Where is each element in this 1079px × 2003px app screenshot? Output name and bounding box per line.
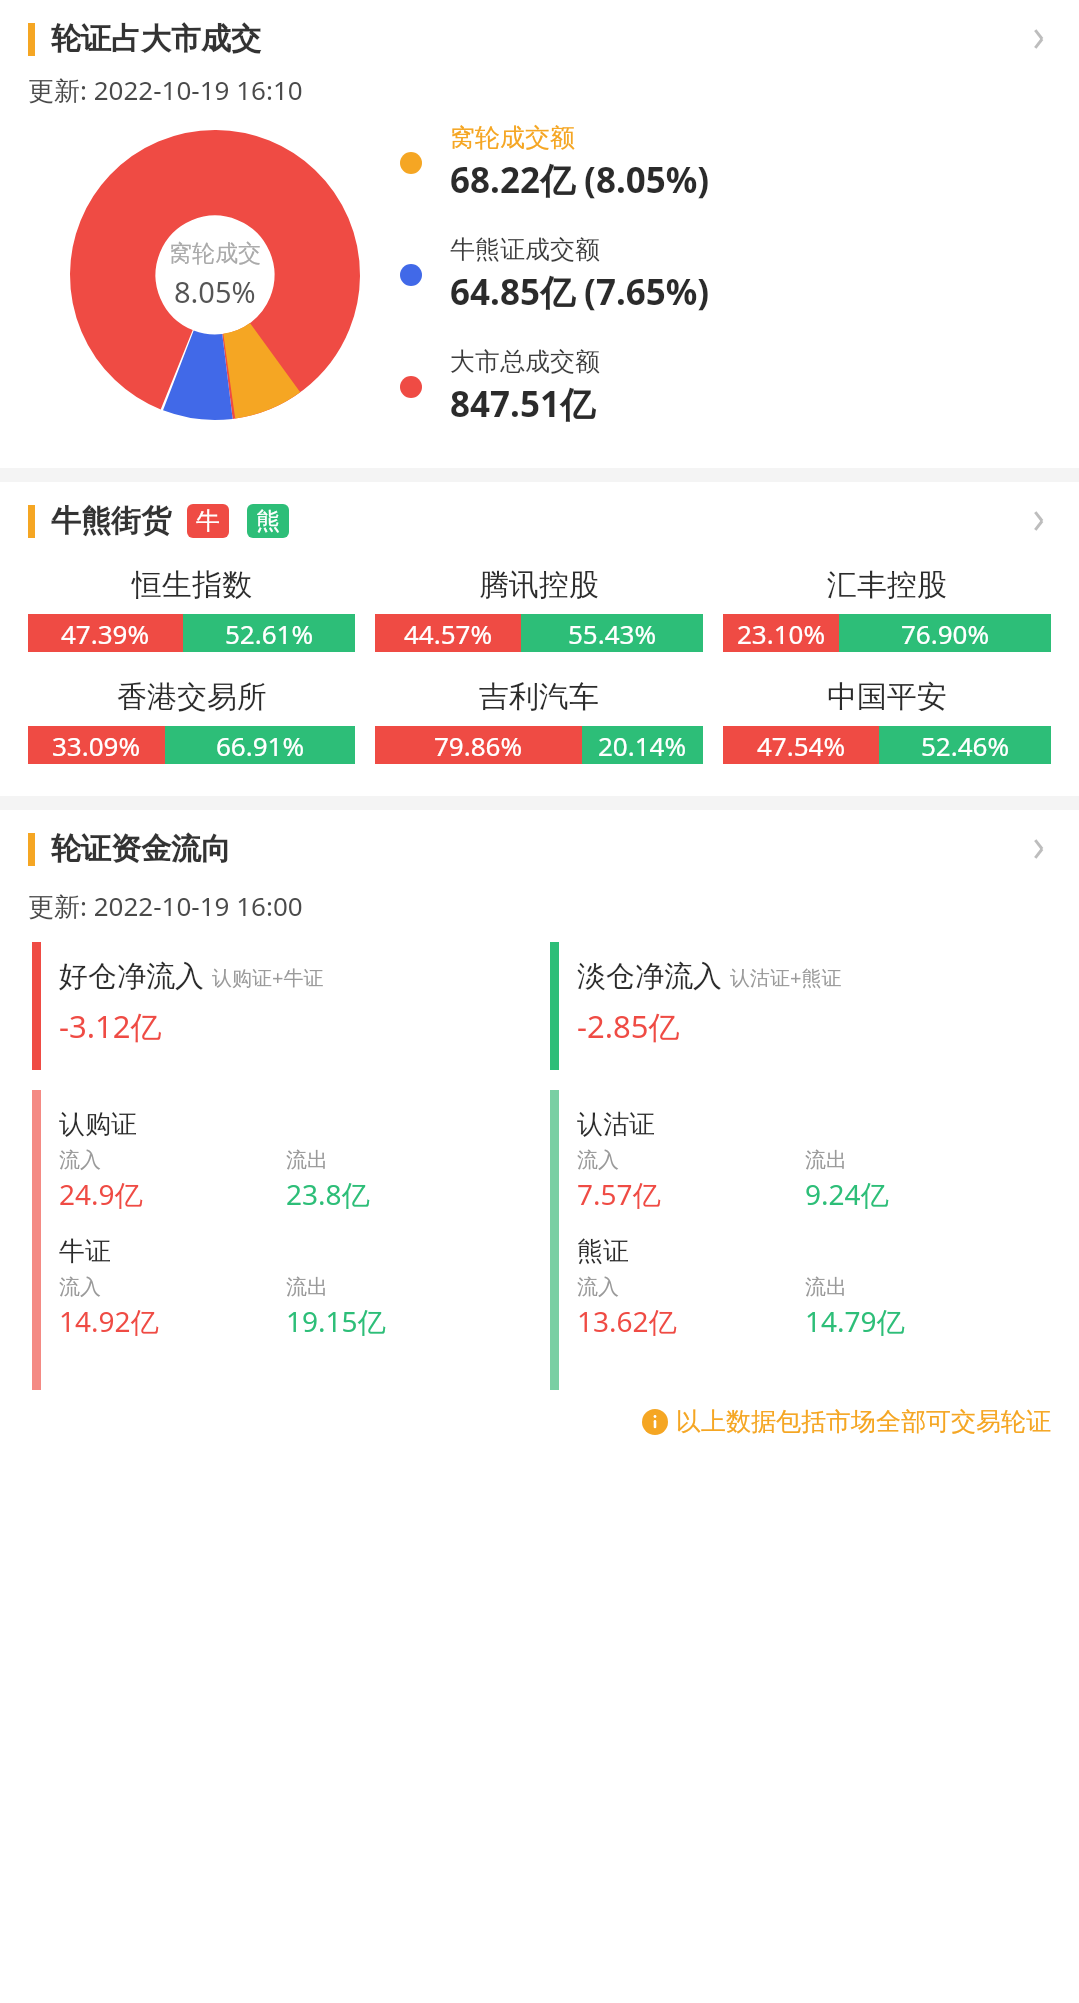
staticText: 7.57亿: [577, 1175, 661, 1213]
button[interactable]: 香港交易所: [18, 672, 365, 770]
staticText: 847.51亿: [450, 380, 595, 428]
staticText: 流入: [577, 1147, 619, 1173]
staticText: 轮证资金流向: [51, 830, 231, 868]
button[interactable]: 轮证资金流向: [0, 810, 1079, 874]
staticText: 76.90%: [901, 616, 990, 651]
staticText: 好仓净流入: [59, 958, 204, 995]
staticText: 以上数据包括市场全部可交易轮证: [676, 1406, 1051, 1437]
staticText: 淡仓净流入: [577, 958, 722, 995]
button[interactable]: 恒生指数: [18, 560, 365, 658]
staticText: -2.85亿: [577, 1005, 680, 1047]
staticText: 大市总成交额: [450, 346, 600, 377]
staticText: 牛证: [59, 1235, 111, 1268]
staticText: 更新: 2022-10-19 16:00: [28, 888, 303, 924]
staticText: 14.92亿: [59, 1302, 159, 1340]
staticText: 66.91%: [216, 728, 305, 763]
staticText: 68.22亿 (8.05%): [450, 156, 710, 204]
staticText: 8.05%: [174, 272, 256, 311]
staticText: 窝轮成交: [169, 239, 261, 268]
staticText: 牛: [196, 506, 220, 536]
staticText: 流出: [805, 1274, 847, 1300]
button[interactable]: 大市总成交额: [400, 346, 1059, 428]
other: Information: [642, 1409, 668, 1435]
staticText: 9.24亿: [805, 1175, 889, 1213]
button[interactable]: 牛熊街货: [0, 482, 1079, 546]
staticText: 33.09%: [52, 728, 141, 763]
staticText: 香港交易所: [117, 678, 267, 716]
staticText: 认沽证: [577, 1108, 655, 1141]
staticText: 认沽证+熊证: [730, 964, 842, 991]
staticText: 20.14%: [598, 728, 687, 763]
staticText: 吉利汽车: [479, 678, 599, 716]
button[interactable]: 轮证占大市成交: [0, 0, 1079, 64]
staticText: 腾讯控股: [479, 566, 599, 604]
staticText: 窝轮成交额: [450, 122, 575, 153]
staticText: 恒生指数: [132, 566, 252, 604]
staticText: 流出: [286, 1274, 328, 1300]
staticText: 轮证占大市成交: [51, 20, 261, 58]
staticText: 19.15亿: [286, 1302, 386, 1340]
staticText: 47.54%: [757, 728, 846, 763]
button[interactable]: 认沽证: [550, 1090, 1047, 1390]
button[interactable]: Information: [0, 1406, 1079, 1437]
staticText: 熊: [256, 506, 280, 536]
staticText: 64.85亿 (7.65%): [450, 268, 710, 316]
staticText: 更新: 2022-10-19 16:10: [28, 72, 303, 108]
staticText: 47.39%: [61, 616, 150, 651]
staticText: 流入: [577, 1274, 619, 1300]
staticText: 24.9亿: [59, 1175, 143, 1213]
staticText: 流出: [805, 1147, 847, 1173]
staticText: 23.8亿: [286, 1175, 370, 1213]
staticText: 52.46%: [921, 728, 1010, 763]
button[interactable]: 汇丰控股: [713, 560, 1061, 658]
staticText: 牛熊证成交额: [450, 234, 600, 265]
staticText: -3.12亿: [59, 1005, 162, 1047]
staticText: 熊证: [577, 1235, 629, 1268]
staticText: 79.86%: [434, 728, 523, 763]
button[interactable]: 淡仓净流入: [550, 942, 1047, 1070]
staticText: 55.43%: [568, 616, 657, 651]
button[interactable]: 牛熊证成交额: [400, 234, 1059, 316]
staticText: 52.61%: [225, 616, 314, 651]
button[interactable]: 吉利汽车: [365, 672, 713, 770]
staticText: 中国平安: [827, 678, 947, 716]
button[interactable]: 认购证: [32, 1090, 528, 1390]
staticText: 认购证+牛证: [212, 964, 324, 991]
staticText: 认购证: [59, 1108, 137, 1141]
staticText: 流出: [286, 1147, 328, 1173]
staticText: 44.57%: [404, 616, 493, 651]
staticText: 汇丰控股: [827, 566, 947, 604]
staticText: 13.62亿: [577, 1302, 677, 1340]
staticText: 流入: [59, 1147, 101, 1173]
staticText: 流入: [59, 1274, 101, 1300]
staticText: 14.79亿: [805, 1302, 905, 1340]
staticText: 23.10%: [737, 616, 826, 651]
button[interactable]: 中国平安: [713, 672, 1061, 770]
button[interactable]: 好仓净流入: [32, 942, 528, 1070]
button[interactable]: 腾讯控股: [365, 560, 713, 658]
staticText: 牛熊街货: [51, 502, 171, 540]
button[interactable]: 窝轮成交额: [400, 122, 1059, 204]
